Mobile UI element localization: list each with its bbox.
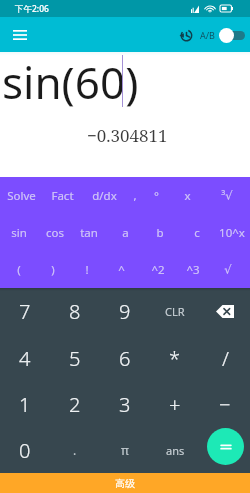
button[interactable]: a bbox=[108, 214, 143, 251]
staticText: b bbox=[156, 225, 164, 241]
staticText: tan bbox=[80, 225, 98, 241]
staticText: ^3 bbox=[186, 262, 200, 278]
button[interactable]: 9 bbox=[100, 288, 150, 335]
staticText: 5 bbox=[69, 345, 81, 372]
staticText: sin bbox=[11, 225, 27, 241]
staticText: ^2 bbox=[151, 262, 165, 278]
staticText: 1 bbox=[19, 391, 31, 418]
button[interactable]: History bbox=[176, 25, 196, 45]
button[interactable]: ^3 bbox=[175, 251, 210, 288]
staticText: sin(60) bbox=[2, 52, 139, 112]
staticText: 10^x bbox=[219, 225, 245, 241]
staticText: Fact bbox=[51, 188, 74, 204]
staticText: 4 bbox=[19, 345, 31, 372]
staticText: 2 bbox=[69, 391, 81, 418]
staticText: d/dx bbox=[92, 188, 117, 204]
button[interactable]: tan bbox=[71, 214, 106, 251]
button[interactable]: sin bbox=[1, 214, 36, 251]
staticText: a bbox=[122, 225, 129, 241]
staticText: CLR bbox=[165, 304, 185, 319]
staticText: − bbox=[219, 391, 231, 418]
button[interactable]: d/dx bbox=[87, 177, 122, 214]
button[interactable]: x bbox=[170, 177, 205, 214]
staticText: x bbox=[184, 188, 191, 204]
button[interactable] bbox=[200, 427, 250, 473]
staticText: Solve bbox=[7, 188, 36, 204]
staticText: ans bbox=[166, 443, 185, 458]
button[interactable]: CLR bbox=[150, 288, 200, 335]
staticText: ( bbox=[17, 262, 21, 278]
staticText: ³√ bbox=[221, 188, 233, 204]
button[interactable]: ( bbox=[1, 251, 36, 288]
staticText: , bbox=[133, 188, 137, 204]
other: Backspace bbox=[216, 305, 234, 318]
button[interactable]: 8 bbox=[50, 288, 100, 335]
button[interactable]: ³√ bbox=[209, 177, 244, 214]
button[interactable]: ! bbox=[69, 251, 104, 288]
button[interactable]: 0 bbox=[0, 427, 50, 473]
button[interactable]: Equals bbox=[207, 428, 244, 465]
button[interactable]: 3 bbox=[100, 381, 150, 427]
staticText: c bbox=[194, 225, 200, 241]
staticText: cos bbox=[46, 225, 64, 241]
button[interactable]: 2 bbox=[50, 381, 100, 427]
button[interactable]: c bbox=[179, 214, 214, 251]
button[interactable]: 高级 bbox=[0, 473, 250, 493]
staticText: ) bbox=[51, 262, 55, 278]
staticText: 9 bbox=[119, 298, 131, 325]
staticText: 高级 bbox=[115, 477, 135, 490]
button[interactable]: π bbox=[100, 427, 150, 473]
staticText: 7 bbox=[19, 298, 31, 325]
button[interactable]: 10^x bbox=[214, 214, 249, 251]
button[interactable]: 5 bbox=[50, 335, 100, 381]
button[interactable]: + bbox=[150, 381, 200, 427]
button[interactable]: 4 bbox=[0, 335, 50, 381]
button[interactable]: ) bbox=[35, 251, 70, 288]
button[interactable]: Toggle A/B bbox=[218, 25, 246, 45]
button[interactable]: Solve bbox=[4, 177, 39, 214]
staticText: 下午2:06 bbox=[15, 3, 49, 15]
staticText: . bbox=[73, 442, 77, 458]
staticText: 6 bbox=[119, 345, 131, 372]
button[interactable]: , bbox=[117, 177, 152, 214]
staticText: ^ bbox=[118, 262, 125, 278]
button[interactable]: b bbox=[142, 214, 177, 251]
staticText: 0 bbox=[19, 437, 31, 464]
button[interactable]: − bbox=[200, 381, 250, 427]
button[interactable]: * bbox=[150, 335, 200, 381]
button[interactable]: . bbox=[50, 427, 100, 473]
staticText: A/B bbox=[200, 29, 215, 41]
button[interactable]: Menu bbox=[8, 23, 32, 47]
button[interactable]: ans bbox=[150, 427, 200, 473]
button[interactable]: 7 bbox=[0, 288, 50, 335]
button[interactable]: cos bbox=[37, 214, 72, 251]
staticText: / bbox=[222, 345, 229, 372]
staticText: 8 bbox=[69, 298, 81, 325]
button[interactable]: ° bbox=[139, 177, 174, 214]
staticText: π bbox=[121, 442, 129, 458]
button[interactable]: ^ bbox=[104, 251, 139, 288]
button[interactable]: 1 bbox=[0, 381, 50, 427]
staticText: −0.304811 bbox=[87, 124, 168, 147]
button[interactable]: ^2 bbox=[140, 251, 175, 288]
staticText: * bbox=[169, 345, 181, 372]
button[interactable]: √ bbox=[210, 251, 245, 288]
staticText: 3 bbox=[119, 391, 131, 418]
staticText: √ bbox=[224, 263, 232, 276]
button[interactable]: 6 bbox=[100, 335, 150, 381]
button[interactable]: Fact bbox=[45, 177, 80, 214]
button[interactable]: Backspace bbox=[200, 288, 250, 335]
staticText: ! bbox=[85, 262, 89, 278]
staticText: + bbox=[169, 391, 181, 418]
button[interactable]: / bbox=[200, 335, 250, 381]
staticText: ° bbox=[154, 188, 159, 204]
